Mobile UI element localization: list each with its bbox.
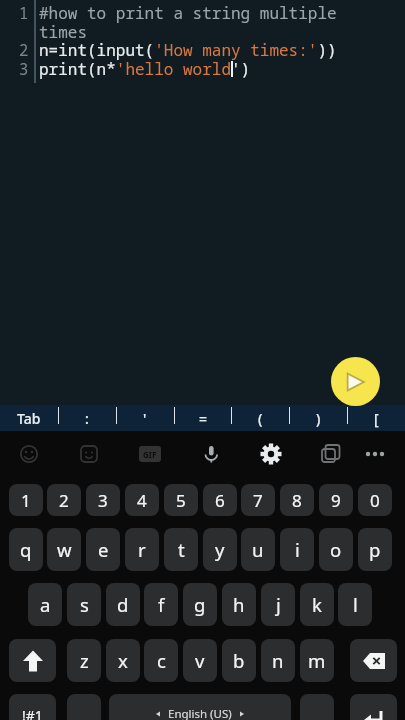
staticText: d (117, 592, 129, 617)
button[interactable]: GIF (130, 434, 170, 474)
button[interactable]: u (241, 528, 275, 571)
button[interactable] (191, 434, 231, 474)
staticText: h (233, 592, 245, 617)
button[interactable]: x (106, 639, 140, 682)
button[interactable] (355, 434, 395, 474)
button[interactable] (311, 434, 351, 474)
staticText: 3 (98, 489, 108, 512)
button[interactable] (69, 434, 109, 474)
staticText: #how to print a string multiple (39, 2, 337, 24)
button[interactable]: !#1 (9, 694, 56, 720)
button[interactable]: s (67, 583, 101, 626)
button[interactable] (67, 694, 101, 720)
button[interactable]: c (144, 639, 178, 682)
staticText: x (118, 648, 128, 673)
staticText: m (308, 648, 326, 673)
staticText: : (85, 409, 89, 428)
staticText: o (330, 537, 342, 562)
button[interactable]: g (183, 583, 217, 626)
button[interactable]: v (183, 639, 217, 682)
staticText: 7 (253, 489, 263, 512)
staticText: = (199, 409, 208, 428)
button[interactable]: b (222, 639, 256, 682)
button[interactable]: h (222, 583, 256, 626)
staticText: [ (374, 409, 379, 428)
button[interactable]: [ (347, 405, 405, 431)
staticText: a (40, 592, 51, 617)
button[interactable]: 5 (164, 484, 198, 516)
button[interactable]: w (47, 528, 81, 571)
button[interactable]: 2 (47, 484, 81, 516)
button[interactable]: 1 (9, 484, 43, 516)
button[interactable]: q (9, 528, 43, 571)
staticText: 6 (215, 489, 225, 512)
staticText: !#1 (22, 706, 43, 720)
button[interactable]: j (261, 583, 295, 626)
button[interactable]: = (174, 405, 232, 431)
button[interactable] (350, 639, 397, 682)
button[interactable]: 9 (319, 484, 353, 516)
button[interactable]: r (125, 528, 159, 571)
button[interactable]: y (203, 528, 237, 571)
staticText: n=int(input('How many times:')) (39, 39, 337, 61)
button[interactable] (9, 639, 56, 682)
button[interactable]: 3 (86, 484, 120, 516)
button[interactable]: i (280, 528, 314, 571)
button[interactable] (331, 357, 380, 406)
staticText: v (195, 648, 205, 673)
button[interactable]: 8 (280, 484, 314, 516)
staticText: u (252, 537, 264, 562)
staticText: 8 (292, 489, 302, 512)
button[interactable]: m (300, 639, 334, 682)
staticText: 4 (137, 489, 147, 512)
staticText: b (233, 648, 245, 673)
button[interactable]: f (144, 583, 178, 626)
staticText: ) (316, 409, 321, 428)
staticText: s (80, 592, 89, 617)
button[interactable]: 7 (241, 484, 275, 516)
staticText: f (158, 592, 165, 617)
button[interactable]: k (300, 583, 334, 626)
staticText: k (312, 592, 322, 617)
staticText: l (353, 592, 358, 617)
button[interactable] (350, 694, 397, 720)
button[interactable]: d (106, 583, 140, 626)
staticText: i (295, 537, 300, 562)
button[interactable]: : (58, 405, 116, 431)
button[interactable]: Tab (0, 405, 58, 431)
button[interactable]: n (261, 639, 295, 682)
staticText: z (80, 648, 89, 673)
staticText: n (272, 648, 284, 673)
staticText: 5 (176, 489, 186, 512)
button[interactable]: 4 (125, 484, 159, 516)
button[interactable] (9, 434, 49, 474)
button[interactable]: English (US) (109, 694, 291, 720)
button[interactable]: e (86, 528, 120, 571)
button[interactable]: t (164, 528, 198, 571)
button[interactable]: l (338, 583, 372, 626)
button[interactable]: o (319, 528, 353, 571)
button[interactable]: z (67, 639, 101, 682)
staticText: 1 (19, 2, 29, 23)
staticText: e (98, 537, 109, 562)
button[interactable]: p (358, 528, 392, 571)
staticText: Tab (17, 409, 41, 428)
button[interactable]: ( (231, 405, 289, 431)
staticText: ' (143, 409, 147, 428)
staticText: 2 (19, 39, 29, 60)
staticText: English (US) (168, 706, 232, 720)
staticText: r (138, 537, 146, 562)
button[interactable] (251, 434, 291, 474)
staticText: w (57, 537, 72, 562)
staticText: 9 (331, 489, 341, 512)
staticText: 0 (370, 489, 380, 512)
button[interactable]: 6 (203, 484, 237, 516)
button[interactable]: ' (116, 405, 174, 431)
button[interactable]: ) (289, 405, 347, 431)
staticText: j (276, 592, 281, 617)
button[interactable]: a (28, 583, 62, 626)
staticText: 3 (19, 58, 29, 79)
button[interactable] (300, 694, 334, 720)
button[interactable]: 0 (358, 484, 392, 516)
staticText: print(n*'hello world') (39, 58, 251, 80)
